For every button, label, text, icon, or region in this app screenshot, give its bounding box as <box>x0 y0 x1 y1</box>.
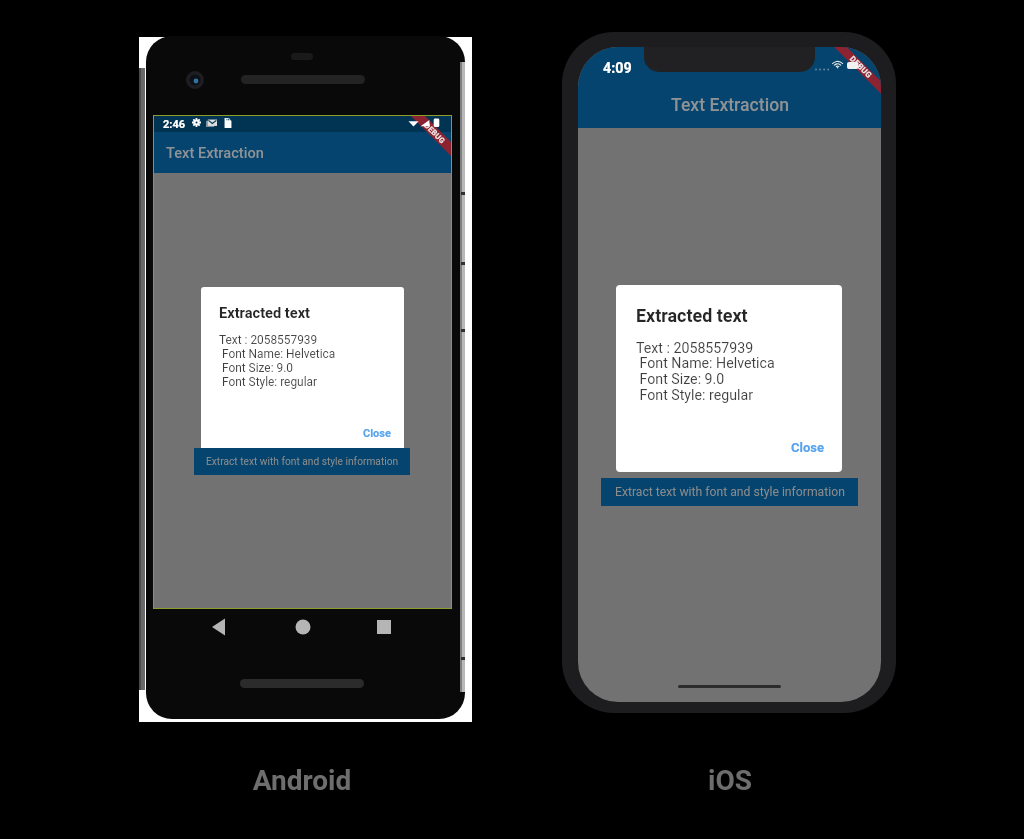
staticText: Extracted text <box>219 304 310 321</box>
staticText: 4:09 <box>603 60 632 77</box>
staticText: Extracted text <box>636 305 748 326</box>
staticText: DEBUG <box>848 54 874 81</box>
staticText: Text Extraction <box>671 95 789 116</box>
button[interactable]: Close <box>791 440 825 455</box>
staticText: Extract text with font and style informa… <box>615 485 845 499</box>
button[interactable]: Extract text with font and style informa… <box>194 448 410 475</box>
staticText: Text : 2058557939 Font Name: Helvetica F… <box>636 340 775 404</box>
staticText: 2:46 <box>163 118 186 131</box>
staticText: Close <box>791 440 825 455</box>
staticText: DEBUG <box>422 121 447 146</box>
staticText: Text Extraction <box>166 144 264 161</box>
button[interactable]: Extract text with font and style informa… <box>601 478 858 506</box>
staticText: Extract text with font and style informa… <box>206 456 399 468</box>
button[interactable]: Close <box>363 427 391 440</box>
staticText: Close <box>363 427 391 440</box>
other: System navigation bar <box>146 609 465 649</box>
staticText: iOS <box>650 764 810 797</box>
staticText: Text : 2058557939 Font Name: Helvetica F… <box>219 333 336 389</box>
staticText: Android <box>222 764 382 797</box>
